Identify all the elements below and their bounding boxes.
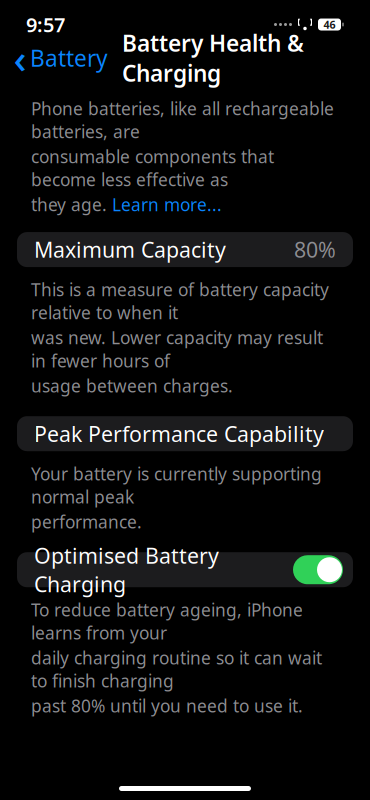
staticText: Peak Performance Capability — [34, 419, 324, 448]
staticText: 9:57 — [26, 11, 65, 38]
button[interactable]: Peak Performance Capability — [17, 416, 353, 451]
staticText: 46 — [323, 17, 335, 32]
staticText: Battery — [30, 43, 108, 73]
button[interactable]: Maximum Capacity — [17, 232, 353, 267]
button[interactable]: Optimised Battery Charging — [17, 552, 353, 587]
staticText: past 80% until you need to use it. — [31, 694, 303, 717]
staticText: To reduce battery ageing, iPhone learns … — [31, 598, 303, 644]
button[interactable]: Learn more... — [112, 193, 222, 216]
staticText: daily charging routine so it can wait to… — [31, 646, 322, 692]
staticText: 80% — [294, 235, 336, 264]
staticText: they age. — [31, 193, 112, 216]
staticText: Phone batteries, like all rechargeable b… — [31, 97, 334, 143]
staticText: usage between charges. — [31, 374, 233, 397]
staticText: consumable components that become less e… — [31, 145, 274, 191]
staticText: ‹ — [13, 31, 26, 84]
staticText: Learn more... — [112, 193, 222, 216]
staticText: performance. — [31, 510, 142, 533]
staticText: was new. Lower capacity may result in fe… — [31, 326, 323, 372]
staticText: Battery Health & Charging — [122, 28, 304, 88]
staticText: Maximum Capacity — [34, 235, 226, 264]
staticText: This is a measure of battery capacity re… — [31, 278, 329, 324]
staticText: Your battery is currently supporting nor… — [31, 462, 322, 508]
button[interactable]: ‹ — [10, 36, 112, 80]
staticText: Optimised Battery Charging — [34, 541, 219, 598]
